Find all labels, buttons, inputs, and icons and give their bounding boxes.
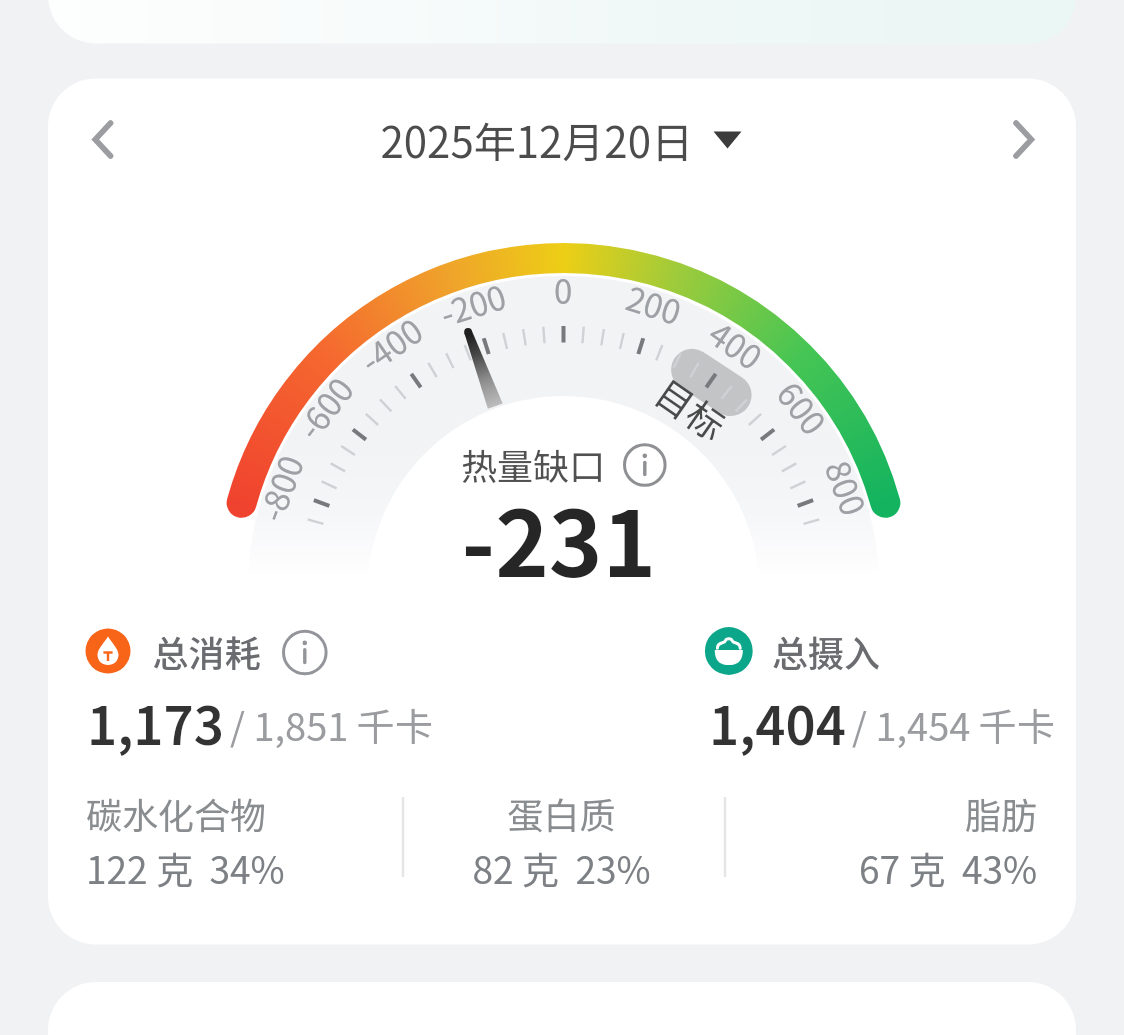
button[interactable]: 总消耗: [80, 620, 142, 682]
button[interactable]: 蛋白质 82 克 23%: [412, 780, 718, 900]
button[interactable]: 热量缺口 -231 千卡: [452, 228, 676, 336]
button[interactable]: 热量缺口说明: [622, 444, 664, 486]
button[interactable]: 总摄入: [698, 620, 760, 682]
button[interactable]: 脂肪 67 克 43%: [734, 780, 1054, 900]
button[interactable]: 总消耗说明: [280, 630, 324, 674]
button[interactable]: 选择日期 2025年12月20日: [370, 102, 750, 178]
button[interactable]: 上一天: [60, 96, 148, 184]
button[interactable]: 碳水化合物 122 克 34%: [70, 780, 400, 900]
button[interactable]: 下一天: [976, 96, 1064, 184]
